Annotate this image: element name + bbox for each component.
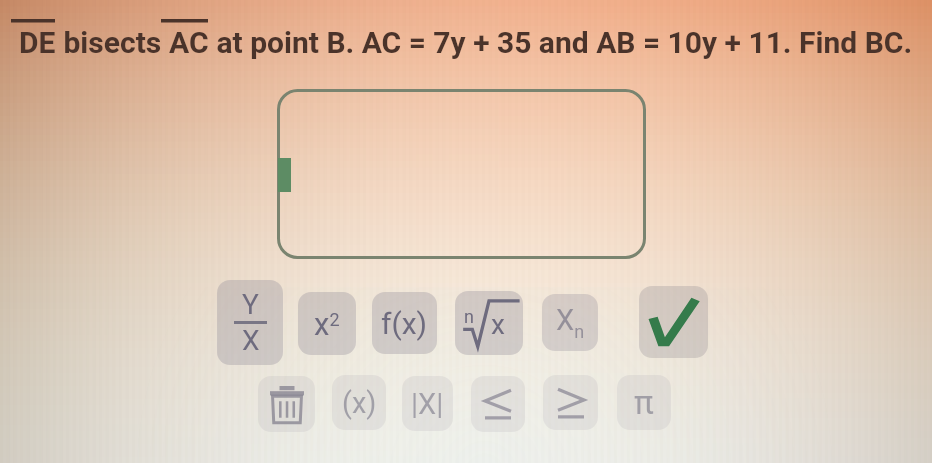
button[interactable]: x subscript n: [542, 294, 598, 351]
button[interactable]: Answer input: [277, 89, 646, 259]
staticText: (x): [342, 386, 377, 420]
staticText: Y: [242, 288, 259, 321]
button[interactable]: Parentheses: [332, 375, 386, 430]
staticText: |X|: [411, 387, 444, 421]
button[interactable]: nth root: [455, 291, 523, 355]
button[interactable]: Submit answer: [639, 286, 708, 358]
staticText: π: [634, 383, 654, 422]
button[interactable]: f of x: [372, 292, 437, 354]
button[interactable]: Absolute value: [402, 376, 453, 431]
staticText: n: [464, 306, 474, 327]
staticText: Xn: [556, 303, 585, 343]
staticText: x: [491, 308, 505, 341]
staticText: X: [242, 324, 260, 357]
button[interactable]: Fraction: [217, 280, 283, 365]
button[interactable]: Less than or equal to: [471, 376, 525, 432]
button[interactable]: Pi: [617, 375, 671, 430]
staticText: f(x): [381, 306, 428, 341]
button[interactable]: x squared: [298, 292, 356, 355]
button[interactable]: Delete: [258, 376, 315, 432]
button[interactable]: Greater than or equal to: [543, 375, 598, 430]
staticText: x2: [314, 306, 340, 342]
